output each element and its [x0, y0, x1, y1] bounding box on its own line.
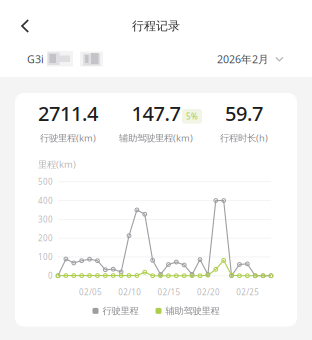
staticText: 辅助驾驶里程 — [165, 305, 219, 317]
staticText: 100 — [38, 252, 53, 262]
staticText: 辅助驾驶里程(km) — [119, 132, 193, 144]
staticText: 02/15 — [158, 287, 181, 297]
button[interactable]: 2026年2月 — [217, 49, 284, 69]
staticText: 2711.4 — [38, 100, 98, 127]
staticText: 500 — [38, 176, 53, 187]
staticText: 400 — [38, 195, 53, 206]
staticText: 里程(km) — [38, 158, 76, 170]
staticText: 02/10 — [118, 287, 141, 297]
staticText: 0 — [48, 270, 53, 281]
staticText: 300 — [38, 214, 53, 225]
staticText: 行驶里程(km) — [40, 132, 96, 144]
staticText: 02/25 — [236, 287, 259, 297]
button[interactable]: G3i — [27, 46, 105, 71]
staticText: 5% — [186, 111, 198, 122]
staticText: G3i — [27, 52, 44, 66]
staticText: 200 — [38, 233, 53, 243]
button[interactable]: Back — [0, 11, 43, 41]
staticText: 行驶里程 — [102, 305, 138, 317]
staticText: 行程时长(h) — [220, 132, 268, 144]
staticText: 行程记录 — [132, 19, 180, 33]
staticText: 2026年2月 — [217, 52, 269, 66]
staticText: 02/05 — [79, 287, 102, 297]
staticText: 02/20 — [197, 287, 220, 297]
staticText: 59.7 — [225, 100, 263, 127]
staticText: 147.7 — [131, 100, 180, 127]
